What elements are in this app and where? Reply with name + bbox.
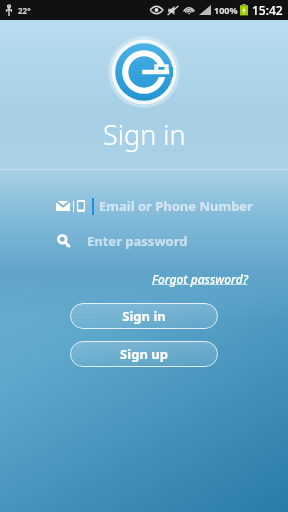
staticText: Sign in [103,116,186,153]
button[interactable]: Enter password [0,227,288,255]
staticText: Sign up [120,345,168,363]
staticText: Enter password [87,232,188,250]
other: App logo [108,36,180,108]
button[interactable]: Sign up [70,341,218,367]
button[interactable]: Sign in [70,303,218,329]
staticText: Sign in [122,307,166,325]
button[interactable]: Forgot password? [152,269,288,289]
staticText: Email or Phone Number [99,197,253,215]
staticText: 22° [18,5,31,16]
button[interactable]: Email or Phone Number [0,192,288,220]
staticText: 15:42 [252,2,283,18]
staticText: 100% [214,4,238,16]
staticText: Forgot password? [152,271,248,287]
